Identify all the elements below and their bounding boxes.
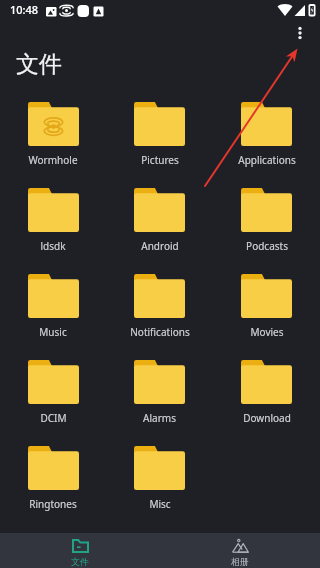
staticText: Music bbox=[39, 325, 67, 339]
button[interactable]: Android bbox=[106, 186, 213, 253]
staticText: Pictures bbox=[141, 153, 179, 167]
button[interactable]: Applications bbox=[213, 100, 320, 167]
button[interactable]: Music bbox=[0, 272, 106, 339]
button[interactable]: 文件 bbox=[0, 533, 160, 568]
staticText: Ringtones bbox=[29, 497, 77, 511]
button[interactable]: Pictures bbox=[106, 100, 213, 167]
button[interactable]: ldsdk bbox=[0, 186, 106, 253]
staticText: Android bbox=[141, 239, 179, 253]
staticText: Applications bbox=[238, 153, 296, 167]
staticText: Notifications bbox=[130, 325, 190, 339]
staticText: 文件 bbox=[71, 556, 89, 567]
button[interactable]: Podcasts bbox=[213, 186, 320, 253]
button[interactable]: 相册 bbox=[160, 533, 320, 568]
button[interactable]: Download bbox=[213, 358, 320, 425]
staticText: 相册 bbox=[231, 556, 249, 567]
button[interactable]: More options bbox=[288, 21, 312, 45]
button[interactable]: Notifications bbox=[106, 272, 213, 339]
button[interactable]: Ringtones bbox=[0, 444, 106, 511]
staticText: 10:48 bbox=[10, 2, 39, 17]
staticText: 文件 bbox=[16, 50, 62, 79]
button[interactable]: Misc bbox=[106, 444, 213, 511]
staticText: Movies bbox=[250, 325, 284, 339]
staticText: ldsdk bbox=[40, 239, 66, 253]
button[interactable]: Wormhole bbox=[0, 100, 106, 167]
staticText: Wormhole bbox=[28, 153, 78, 167]
button[interactable]: Alarms bbox=[106, 358, 213, 425]
staticText: Misc bbox=[149, 497, 171, 511]
button[interactable]: DCIM bbox=[0, 358, 106, 425]
staticText: Alarms bbox=[143, 411, 176, 425]
staticText: Podcasts bbox=[246, 239, 288, 253]
staticText: Download bbox=[243, 411, 291, 425]
button[interactable]: Movies bbox=[213, 272, 320, 339]
staticText: DCIM bbox=[40, 411, 67, 425]
